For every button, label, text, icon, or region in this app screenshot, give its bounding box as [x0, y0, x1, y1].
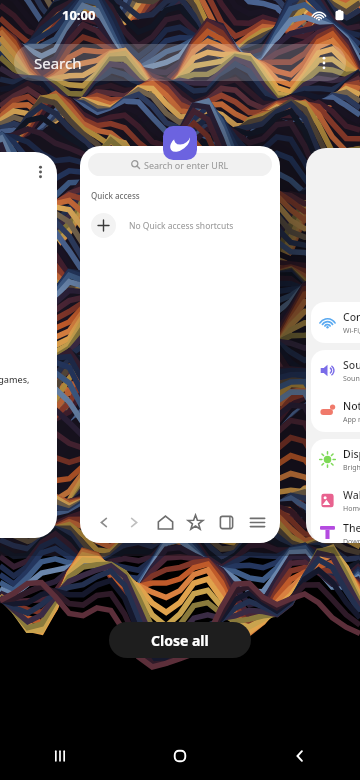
button[interactable]: Home [152, 509, 178, 535]
button[interactable]: Tabs [213, 509, 239, 535]
button[interactable]: Search or enter URL [80, 146, 280, 543]
staticText: Sound mode, Ringtone [343, 374, 360, 384]
button[interactable]: Close all [109, 622, 251, 658]
button[interactable]: Apps, games, movies, [0, 152, 57, 538]
button[interactable]: Themes [311, 521, 360, 543]
button[interactable]: Recents [0, 732, 120, 780]
staticText: Wi-Fi, Bluetooth [343, 326, 360, 336]
staticText: Quick access [91, 190, 140, 201]
button[interactable]: Notifications [311, 391, 360, 432]
staticText: Sounds and vibration [343, 358, 360, 372]
button[interactable]: Forward [121, 509, 147, 535]
staticText: 10:00 [62, 6, 96, 24]
staticText: Search or enter URL [144, 159, 229, 171]
button[interactable]: No Quick access shortcuts [91, 213, 280, 238]
button[interactable]: Home [120, 732, 240, 780]
staticText: Wallpaper and style [343, 488, 360, 502]
button[interactable]: Samsung Internet [163, 126, 197, 160]
button[interactable]: Wallpaper and style [311, 480, 360, 521]
staticText: Brightness, Eye comfort [343, 463, 360, 473]
button[interactable]: Back [90, 509, 116, 535]
button[interactable]: More options [311, 50, 337, 76]
staticText: Display [343, 447, 360, 461]
button[interactable]: Bookmarks [182, 509, 208, 535]
button[interactable]: Search [14, 44, 346, 81]
staticText: Download themes [343, 537, 360, 543]
staticText: Home screen wallpaper [343, 504, 360, 514]
button[interactable]: Connections [306, 148, 360, 543]
button[interactable]: Sounds and vibration [311, 350, 360, 391]
staticText: Apps, games, movies, [0, 373, 57, 385]
button[interactable]: Display [311, 439, 360, 480]
button[interactable]: Back [240, 732, 360, 780]
staticText: App notifications [343, 415, 360, 425]
staticText: No Quick access shortcuts [129, 220, 234, 232]
staticText: Themes [343, 521, 360, 535]
staticText: Connections [343, 310, 360, 324]
staticText: Notifications [343, 399, 360, 413]
button[interactable]: Menu [244, 509, 270, 535]
staticText: Search [34, 53, 82, 73]
staticText: Close all [151, 631, 209, 650]
button[interactable]: Search or enter URL [88, 153, 272, 176]
button[interactable]: Connections [311, 302, 360, 343]
